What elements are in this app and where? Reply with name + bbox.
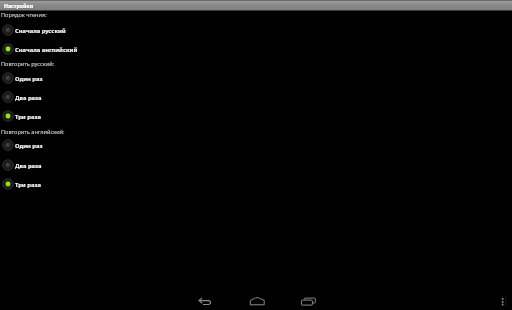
button[interactable]: Back bbox=[195, 293, 215, 309]
button[interactable]: Сначала английский bbox=[0, 40, 512, 58]
button[interactable]: Home bbox=[248, 293, 268, 309]
staticText: Повторить английский: bbox=[1, 128, 65, 136]
button[interactable]: Два раза bbox=[0, 88, 512, 106]
button[interactable]: Один раз bbox=[0, 69, 512, 87]
staticText: Сначала английский bbox=[15, 46, 78, 54]
staticText: Один раз bbox=[15, 142, 43, 150]
button[interactable]: Три раза bbox=[0, 107, 512, 125]
staticText: Два раза bbox=[15, 162, 42, 170]
staticText: Два раза bbox=[15, 94, 42, 102]
staticText: Настройки bbox=[4, 2, 34, 9]
button[interactable]: Два раза bbox=[0, 156, 512, 174]
staticText: Сначала русский bbox=[15, 27, 66, 35]
button[interactable]: More options bbox=[498, 294, 508, 308]
staticText: Повторить русский: bbox=[1, 60, 55, 68]
button[interactable]: Recent apps bbox=[299, 293, 319, 309]
button[interactable]: Три раза bbox=[0, 175, 512, 193]
staticText: Три раза bbox=[15, 113, 41, 121]
staticText: Три раза bbox=[15, 181, 41, 189]
button[interactable]: Один раз bbox=[0, 136, 512, 154]
button[interactable]: Сначала русский bbox=[0, 21, 512, 39]
staticText: Порядок чтения: bbox=[1, 11, 47, 19]
staticText: Один раз bbox=[15, 75, 43, 83]
